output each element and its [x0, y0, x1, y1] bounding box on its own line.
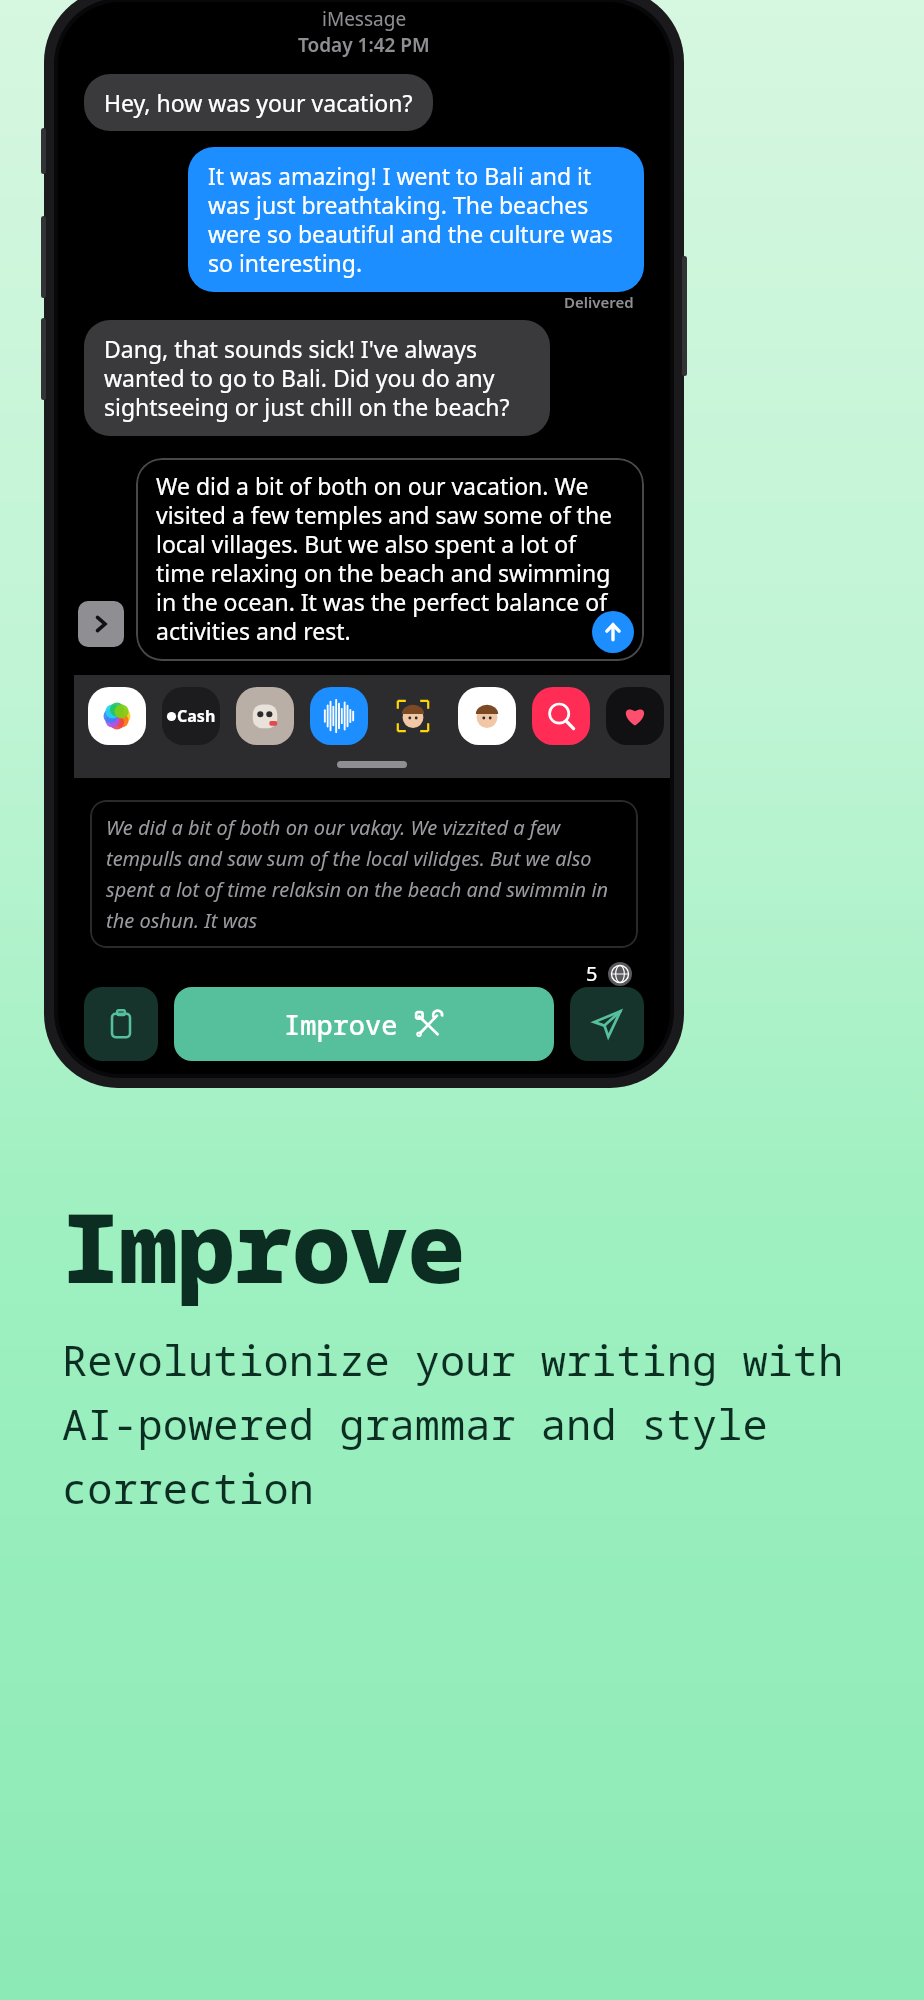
button[interactable]: Paste: [84, 987, 158, 1061]
staticText: Revolutionize your writing with AI-power…: [62, 1331, 862, 1517]
button[interactable]: It was amazing! I went to Bali and it wa…: [188, 147, 644, 292]
button[interactable]: App: [236, 687, 294, 745]
staticText: Improve: [284, 1006, 398, 1043]
staticText: Cash: [177, 705, 216, 727]
staticText: 5: [586, 960, 598, 987]
staticText: Hey, how was your vacation?: [104, 87, 413, 118]
button[interactable]: We did a bit of both on our vakay. We vi…: [90, 800, 638, 948]
staticText: Delivered: [564, 292, 634, 312]
button[interactable]: App: [88, 687, 146, 745]
button[interactable]: Expand: [78, 601, 124, 661]
button[interactable]: App: [606, 687, 664, 745]
staticText: Improve: [62, 1180, 466, 1311]
staticText: Dang, that sounds sick! I've always want…: [104, 333, 530, 423]
button[interactable]: Improve: [174, 987, 554, 1061]
button[interactable]: We did a bit of both on our vacation. We…: [136, 458, 644, 661]
button[interactable]: App: [162, 687, 220, 745]
button[interactable]: App: [532, 687, 590, 745]
button[interactable]: Dang, that sounds sick! I've always want…: [84, 320, 550, 436]
staticText: Today 1:42 PM: [298, 32, 430, 58]
button[interactable]: Hey, how was your vacation?: [84, 74, 433, 131]
button[interactable]: Send: [592, 611, 634, 653]
button[interactable]: Language: [608, 962, 632, 986]
button[interactable]: Send: [570, 987, 644, 1061]
staticText: We did a bit of both on our vacation. We…: [156, 470, 624, 647]
button[interactable]: App: [458, 687, 516, 745]
button[interactable]: App: [310, 687, 368, 745]
button[interactable]: App: [384, 687, 442, 745]
staticText: iMessage: [322, 6, 407, 32]
staticText: It was amazing! I went to Bali and it wa…: [208, 160, 624, 279]
staticText: We did a bit of both on our vakay. We vi…: [106, 814, 622, 934]
